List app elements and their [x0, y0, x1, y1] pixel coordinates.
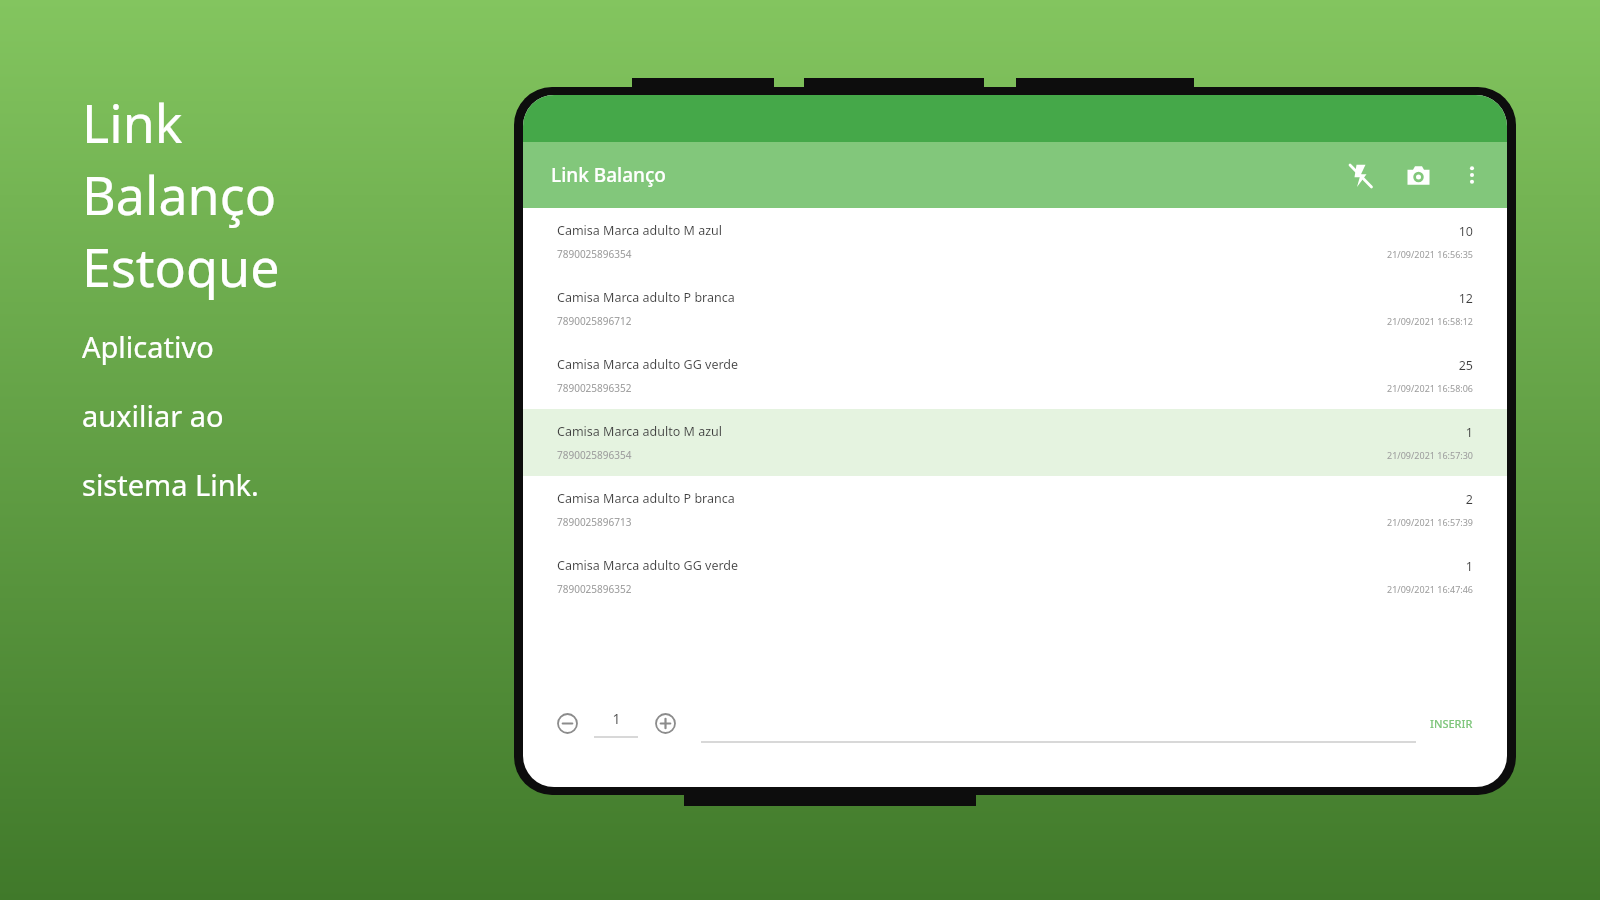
staticText: 1: [1465, 558, 1473, 575]
button[interactable]: Camisa Marca adulto M azul: [523, 208, 1507, 275]
staticText: 2: [1465, 491, 1473, 508]
staticText: 21/09/2021 16:58:12: [1387, 315, 1473, 327]
button[interactable]: Camisa Marca adulto GG verde: [523, 543, 1507, 610]
staticText: 1: [612, 709, 621, 728]
staticText: Link Balanço: [551, 162, 666, 188]
staticText: 10: [1458, 223, 1473, 240]
staticText: 21/09/2021 16:58:06: [1387, 382, 1473, 394]
staticText: Camisa Marca adulto GG verde: [557, 356, 739, 373]
button[interactable]: Increase: [645, 703, 685, 743]
staticText: 7890025896354: [557, 247, 632, 261]
staticText: Camisa Marca adulto M azul: [557, 423, 723, 440]
staticText: Link: [82, 87, 183, 158]
staticText: 21/09/2021 16:57:39: [1387, 516, 1473, 528]
staticText: 7890025896352: [557, 381, 632, 395]
staticText: 25: [1458, 357, 1473, 374]
staticText: 7890025896352: [557, 582, 632, 596]
button[interactable]: Camera: [1395, 152, 1441, 198]
staticText: Camisa Marca adulto M azul: [557, 222, 723, 239]
staticText: 21/09/2021 16:56:35: [1387, 248, 1473, 260]
button[interactable]: Camisa Marca adulto M azul: [523, 409, 1507, 476]
staticText: 21/09/2021 16:57:30: [1387, 449, 1473, 461]
button[interactable]: Camisa Marca adulto GG verde: [523, 342, 1507, 409]
button[interactable]: Camisa Marca adulto P branca: [523, 476, 1507, 543]
button[interactable]: Decrease: [547, 703, 587, 743]
staticText: 21/09/2021 16:47:46: [1387, 583, 1473, 595]
staticText: 12: [1458, 290, 1473, 307]
staticText: Aplicativo: [82, 327, 214, 366]
button[interactable]: [701, 703, 1416, 743]
staticText: auxiliar ao: [82, 396, 224, 435]
staticText: 1: [1465, 424, 1473, 441]
staticText: 7890025896713: [557, 515, 632, 529]
staticText: sistema Link.: [82, 465, 259, 504]
staticText: Camisa Marca adulto P branca: [557, 289, 735, 306]
staticText: Camisa Marca adulto P branca: [557, 490, 735, 507]
staticText: INSERIR: [1430, 716, 1473, 731]
staticText: 7890025896712: [557, 314, 632, 328]
button[interactable]: Camisa Marca adulto P branca: [523, 275, 1507, 342]
staticText: 7890025896354: [557, 448, 632, 462]
button[interactable]: More options: [1449, 152, 1495, 198]
staticText: Balanço: [82, 159, 277, 230]
button[interactable]: INSERIR: [1426, 708, 1477, 739]
staticText: Estoque: [82, 231, 280, 302]
button[interactable]: Flash off: [1337, 152, 1383, 198]
staticText: Camisa Marca adulto GG verde: [557, 557, 739, 574]
